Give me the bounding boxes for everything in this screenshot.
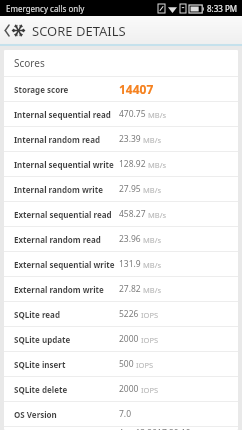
staticText: Scores bbox=[14, 56, 45, 70]
staticText: IOPS bbox=[136, 360, 154, 370]
staticText: Storage score bbox=[14, 84, 119, 95]
staticText: 500 bbox=[119, 358, 134, 370]
staticText: 27.82 bbox=[119, 283, 141, 295]
staticText: SCORE DETAILS bbox=[32, 22, 126, 40]
button[interactable]: External random write bbox=[4, 277, 238, 301]
staticText: 470.75 bbox=[119, 108, 146, 120]
button[interactable]: External sequential read bbox=[4, 202, 238, 226]
button[interactable]: Internal sequential read bbox=[4, 102, 238, 126]
staticText: 27.95 bbox=[119, 183, 141, 195]
staticText: 458.27 bbox=[119, 208, 146, 220]
staticText: 2000 bbox=[119, 333, 139, 345]
staticText: MB/s bbox=[143, 135, 162, 145]
staticText: MB/s bbox=[143, 235, 162, 245]
staticText: IOPS bbox=[141, 310, 159, 320]
staticText: External random read bbox=[14, 234, 119, 245]
staticText: MB/s bbox=[148, 110, 167, 120]
button[interactable]: Internal sequential write bbox=[4, 152, 238, 176]
staticText: Internal random read bbox=[14, 134, 119, 145]
staticText: 23.96 bbox=[119, 233, 141, 245]
staticText: SQLite delete bbox=[14, 384, 119, 395]
staticText: 8:33 PM bbox=[207, 3, 238, 14]
button[interactable]: External random read bbox=[4, 227, 238, 251]
staticText: 14407 bbox=[119, 81, 154, 97]
staticText: External sequential read bbox=[14, 209, 119, 220]
staticText: 131.9 bbox=[119, 258, 141, 270]
staticText: MB/s bbox=[148, 160, 167, 170]
button[interactable]: Date bbox=[4, 427, 238, 430]
button[interactable]: OS Version bbox=[4, 402, 238, 426]
staticText: 7.0 bbox=[119, 408, 132, 420]
button[interactable]: External sequential write bbox=[4, 252, 238, 276]
staticText: MB/s bbox=[143, 260, 162, 270]
staticText: SQLite update bbox=[14, 334, 119, 345]
staticText: 128.92 bbox=[119, 158, 146, 170]
button[interactable]: SQLite delete bbox=[4, 377, 238, 401]
staticText: IOPS bbox=[141, 335, 159, 345]
button[interactable]: SQLite insert bbox=[4, 352, 238, 376]
staticText: External random write bbox=[14, 284, 119, 295]
staticText: External sequential write bbox=[14, 259, 119, 270]
button[interactable]: Internal random write bbox=[4, 177, 238, 201]
staticText: MB/s bbox=[143, 285, 162, 295]
staticText: Apr 13 2017 20:19 bbox=[119, 427, 191, 430]
button[interactable]: Back bbox=[0, 20, 27, 41]
button[interactable]: Internal random read bbox=[4, 127, 238, 151]
staticText: IOPS bbox=[141, 385, 159, 395]
staticText: Internal random write bbox=[14, 184, 119, 195]
staticText: Internal sequential write bbox=[14, 159, 119, 170]
button[interactable]: Storage score bbox=[4, 77, 238, 101]
staticText: Internal sequential read bbox=[14, 109, 119, 120]
button[interactable]: SQLite update bbox=[4, 327, 238, 351]
staticText: MB/s bbox=[148, 210, 167, 220]
staticText: Emergency calls only bbox=[6, 3, 85, 14]
staticText: 23.39 bbox=[119, 133, 141, 145]
staticText: 5226 bbox=[119, 308, 139, 320]
staticText: SQLite read bbox=[14, 309, 119, 320]
button[interactable]: SQLite read bbox=[4, 302, 238, 326]
staticText: MB/s bbox=[143, 185, 162, 195]
staticText: 2000 bbox=[119, 383, 139, 395]
staticText: OS Version bbox=[14, 409, 119, 420]
staticText: SQLite insert bbox=[14, 359, 119, 370]
